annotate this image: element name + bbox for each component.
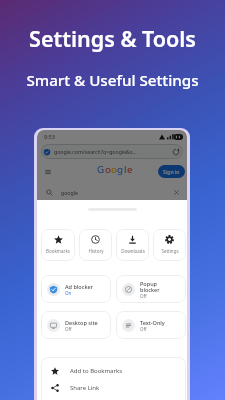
button[interactable]: Bookmarks bbox=[41, 229, 75, 261]
staticText: google bbox=[61, 189, 78, 196]
staticText: History bbox=[88, 248, 104, 254]
staticText: Off bbox=[140, 293, 147, 299]
staticText: o bbox=[105, 163, 111, 176]
staticText: Desktop site bbox=[65, 319, 98, 326]
button[interactable]: Desktop site bbox=[41, 311, 111, 339]
staticText: Bookmarks bbox=[46, 248, 70, 254]
staticText: google.com/search?q=google&s... bbox=[54, 148, 137, 155]
staticText: l bbox=[124, 163, 127, 176]
button[interactable]: Popup blocker bbox=[116, 275, 186, 303]
staticText: Downloads bbox=[121, 248, 145, 254]
staticText: e bbox=[127, 163, 133, 176]
staticText: Sign in bbox=[163, 168, 180, 175]
staticText: Popup blocker bbox=[140, 280, 160, 293]
staticText: Add to Bookmarks bbox=[70, 367, 123, 375]
button[interactable]: Share Link bbox=[41, 379, 186, 396]
staticText: Ad blocker bbox=[65, 283, 93, 290]
staticText: Settings bbox=[161, 248, 179, 254]
staticText: Share Link bbox=[70, 384, 100, 392]
button[interactable]: Text-Only bbox=[116, 311, 186, 339]
staticText: Off bbox=[65, 326, 72, 332]
staticText: Text-Only bbox=[140, 319, 165, 326]
staticText: Settings & Tools bbox=[0, 24, 225, 53]
staticText: Smart & Useful Settings bbox=[0, 70, 225, 91]
staticText: On bbox=[65, 290, 72, 296]
button[interactable]: Downloads bbox=[116, 229, 149, 261]
staticText: Off bbox=[140, 326, 147, 332]
button[interactable]: Add to Bookmarks bbox=[41, 362, 186, 379]
button[interactable]: History bbox=[79, 229, 112, 261]
button[interactable]: Ad blocker bbox=[41, 275, 111, 303]
staticText: o bbox=[111, 163, 117, 176]
staticText: g bbox=[117, 163, 124, 176]
button[interactable]: Settings bbox=[153, 229, 186, 261]
staticText: 9:53 bbox=[44, 133, 55, 140]
staticText: G bbox=[97, 163, 105, 176]
